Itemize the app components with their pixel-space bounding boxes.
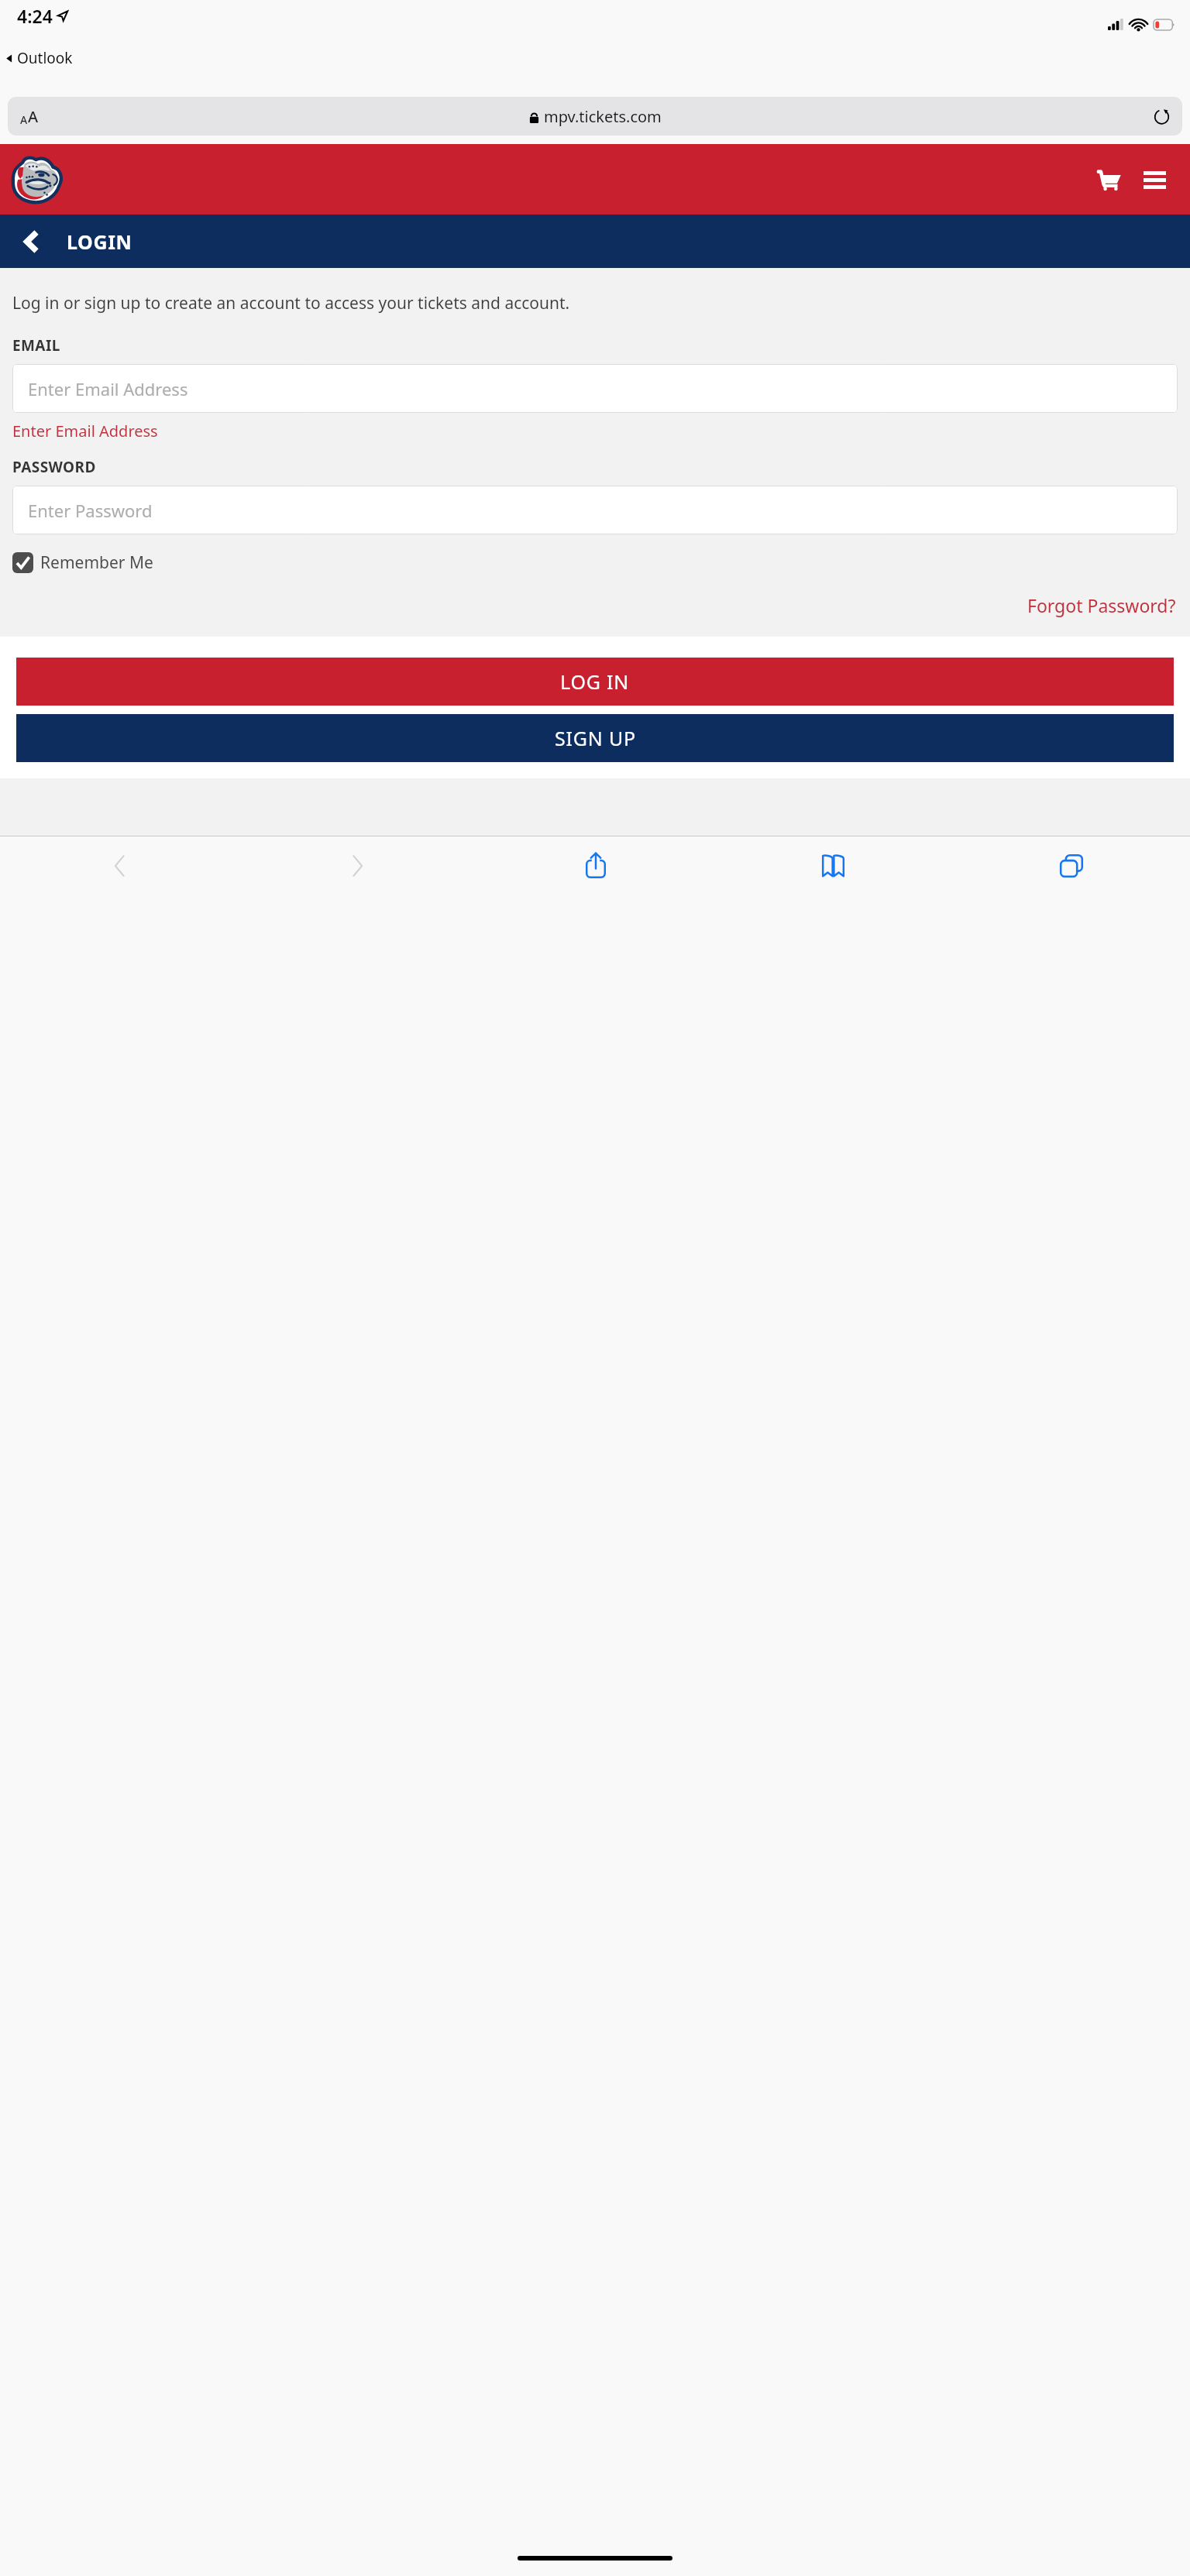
staticText: mpv.tickets.com [544, 106, 662, 127]
staticText: Enter Password [28, 499, 153, 522]
button[interactable]: Tabs [952, 836, 1190, 895]
staticText: Forgot Password? [1027, 593, 1176, 617]
staticText: SIGN UP [555, 725, 636, 751]
button[interactable]: Cart [1092, 163, 1126, 197]
button[interactable]: Reload [1154, 108, 1170, 125]
staticText: LOGIN [67, 228, 132, 255]
button[interactable]: Forgot Password? [1026, 591, 1178, 620]
staticText: Enter Email Address [12, 421, 158, 441]
button[interactable]: Page settings [20, 106, 39, 127]
button[interactable]: Share [476, 836, 714, 895]
button[interactable]: Enter Password [12, 486, 1178, 534]
staticText: A [20, 112, 28, 127]
staticText: A [28, 106, 39, 127]
button[interactable]: Bookmarks [714, 836, 952, 895]
staticText: EMAIL [12, 335, 60, 355]
button[interactable]: Page settings [8, 97, 1182, 136]
button[interactable]: Menu [1137, 163, 1171, 197]
staticText: Outlook [17, 48, 73, 68]
button[interactable]: Back [11, 223, 48, 260]
staticText: LOG IN [560, 668, 630, 695]
staticText: Log in or sign up to create an account t… [12, 292, 1119, 314]
button[interactable]: LOG IN [16, 658, 1174, 706]
button[interactable]: SIGN UP [16, 714, 1174, 762]
button[interactable]: IronPigs home [5, 153, 65, 206]
button[interactable]: Enter Email Address [12, 364, 1178, 413]
staticText: Enter Email Address [28, 377, 188, 400]
button[interactable]: Forward [239, 836, 476, 895]
staticText: PASSWORD [12, 457, 96, 477]
staticText: 4:24 [17, 4, 53, 28]
button[interactable]: Back [0, 836, 239, 895]
staticText: Remember Me [40, 551, 153, 574]
button[interactable]: Remember Me [12, 550, 153, 575]
